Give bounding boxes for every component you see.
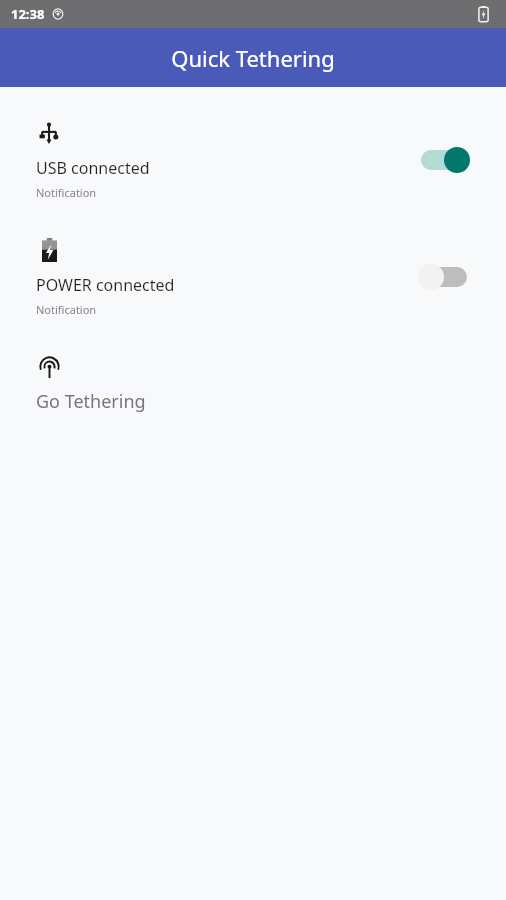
other: Tethering: [36, 354, 62, 380]
button[interactable]: USB: [0, 120, 506, 200]
other: USB: [36, 120, 62, 146]
staticText: Notification: [36, 185, 97, 200]
staticText: Quick Tethering: [171, 43, 335, 73]
other: Power: [36, 237, 62, 263]
staticText: Go Tethering: [36, 389, 146, 414]
staticText: 12:38: [11, 5, 45, 23]
button[interactable]: Power: [0, 237, 506, 317]
staticText: POWER connected: [36, 274, 175, 296]
button[interactable]: Tethering: [0, 354, 506, 414]
button[interactable]: Toggle on: [418, 143, 470, 177]
button[interactable]: Toggle off: [418, 260, 470, 294]
staticText: Notification: [36, 302, 97, 317]
staticText: USB connected: [36, 157, 150, 179]
